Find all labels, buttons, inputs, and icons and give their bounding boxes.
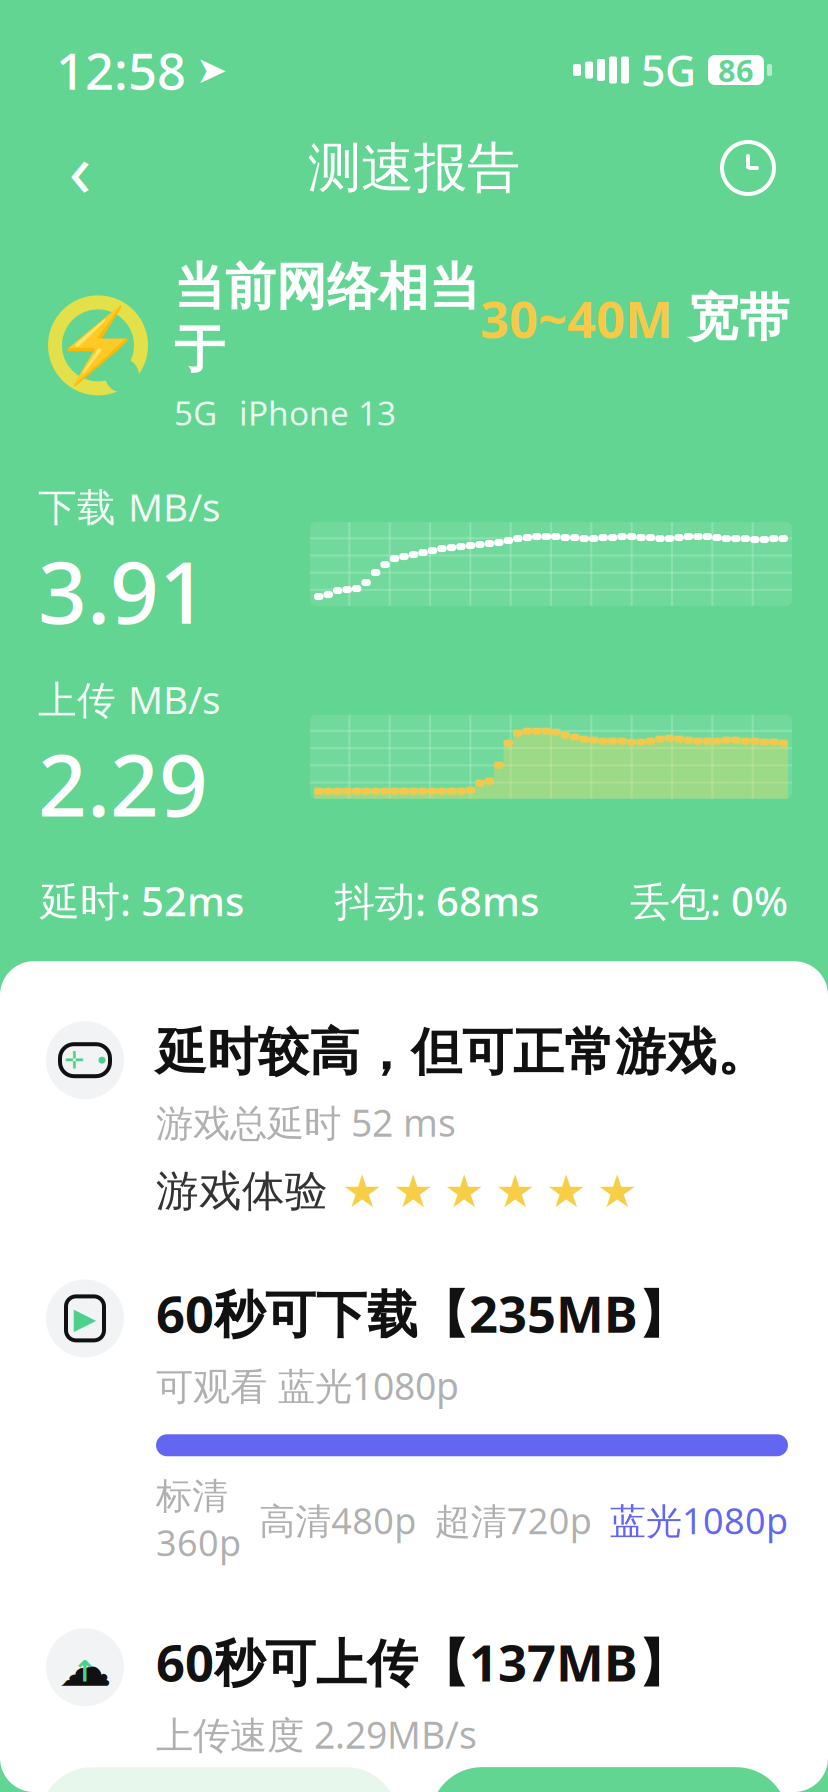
button[interactable]: History	[708, 128, 788, 208]
staticText: ▶	[73, 1302, 96, 1335]
staticText: 超清720p	[435, 1496, 592, 1544]
staticText: 宽带	[673, 287, 790, 349]
staticText: 60秒可上传【137MB】	[156, 1628, 689, 1696]
staticText: 测速报告	[308, 135, 520, 201]
staticText: ★	[342, 1165, 383, 1217]
staticText: ★	[597, 1165, 638, 1217]
staticText: 延时: 52ms	[40, 874, 244, 927]
staticText: 高清480p	[259, 1496, 416, 1544]
staticText: 抖动: 68ms	[335, 874, 539, 927]
staticText: 标清360p	[156, 1474, 241, 1566]
staticText: 2.29	[38, 727, 208, 840]
staticText: ↑	[72, 1655, 97, 1688]
staticText: 5G	[174, 390, 217, 435]
staticText: ➤	[196, 49, 227, 91]
button[interactable]: 截图分享	[430, 1767, 788, 1792]
staticText: iPhone 13	[239, 390, 396, 435]
staticText: 12:58	[56, 36, 186, 104]
staticText: 上传 MB/s	[38, 673, 221, 725]
staticText: 蓝光1080p	[610, 1496, 788, 1544]
staticText: 86	[718, 50, 754, 90]
staticText: ‹	[68, 118, 91, 218]
staticText: ★	[393, 1165, 434, 1217]
staticText: 30~40M	[480, 285, 673, 352]
staticText: 上传速度 2.29MB/s	[156, 1710, 477, 1759]
staticText: 当前网络相当于	[174, 256, 480, 380]
staticText: 5G	[641, 42, 696, 98]
staticText: ★	[444, 1165, 485, 1217]
button[interactable]: Back	[40, 128, 120, 208]
staticText: 可观看 蓝光1080p	[156, 1361, 459, 1410]
staticText: ★	[546, 1165, 587, 1217]
staticText: 丢包: 0%	[630, 874, 788, 927]
staticText: 游戏总延时 52 ms	[156, 1097, 456, 1147]
button[interactable]: 重新测速	[40, 1767, 398, 1792]
staticText: ✛	[64, 1047, 84, 1074]
staticText: ⚡	[53, 304, 143, 386]
staticText: 游戏体验	[156, 1165, 328, 1217]
staticText: 3.91	[38, 534, 208, 647]
staticText: 60秒可下载【235MB】	[156, 1279, 689, 1347]
staticText: 延时较高，但可正常游戏。	[156, 1021, 768, 1083]
staticText: ★	[495, 1165, 536, 1217]
staticText: 下载 MB/s	[38, 481, 221, 532]
staticText: ☁	[58, 1637, 111, 1697]
